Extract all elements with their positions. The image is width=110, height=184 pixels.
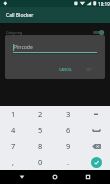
button[interactable]: 1	[0, 106, 27, 122]
other: Space	[91, 125, 102, 136]
button[interactable]: SET	[81, 65, 97, 74]
staticText: 3	[66, 109, 71, 119]
button[interactable]: 3	[54, 106, 82, 122]
button[interactable]: Home	[48, 170, 62, 184]
button[interactable]: 7	[0, 138, 27, 154]
button[interactable]: Backspace	[82, 138, 110, 154]
button[interactable]: 2	[27, 106, 54, 122]
staticText: .	[67, 157, 70, 167]
other: Backspace	[91, 141, 102, 152]
button[interactable]: 6	[54, 122, 82, 138]
button[interactable]: Recents	[81, 170, 95, 184]
other: Dash	[91, 109, 101, 119]
staticText: Pincode	[14, 44, 33, 51]
button[interactable]: 8	[27, 138, 54, 154]
staticText: 0	[38, 157, 43, 167]
staticText: 2	[38, 109, 43, 119]
staticText: 1	[11, 109, 16, 119]
staticText: CANCEL	[59, 67, 72, 72]
staticText: 18:19	[98, 1, 110, 7]
button[interactable]: Outgoing	[0, 26, 110, 38]
button[interactable]: 4	[0, 122, 27, 138]
button[interactable]: 9	[54, 138, 82, 154]
button[interactable]: ,	[0, 154, 27, 170]
button[interactable]: 0	[27, 154, 54, 170]
button[interactable]: Dash	[82, 106, 110, 122]
other: Done	[91, 157, 102, 168]
staticText: 8	[38, 141, 43, 151]
staticText: 4	[11, 125, 16, 135]
staticText: 7	[11, 141, 16, 151]
button[interactable]: Back	[15, 170, 29, 184]
button[interactable]: Space	[82, 122, 110, 138]
staticText: 9	[66, 141, 71, 151]
staticText: SET	[86, 67, 92, 72]
button[interactable]: CANCEL	[54, 65, 81, 74]
staticText: 6	[66, 125, 71, 135]
button[interactable]: Done	[82, 154, 110, 170]
staticText: Outgoing	[6, 30, 23, 35]
staticText: ,	[12, 157, 15, 167]
staticText: 5	[38, 125, 43, 135]
button[interactable]: .	[54, 154, 82, 170]
staticText: Call Blocker	[6, 12, 34, 19]
button[interactable]: 5	[27, 122, 54, 138]
